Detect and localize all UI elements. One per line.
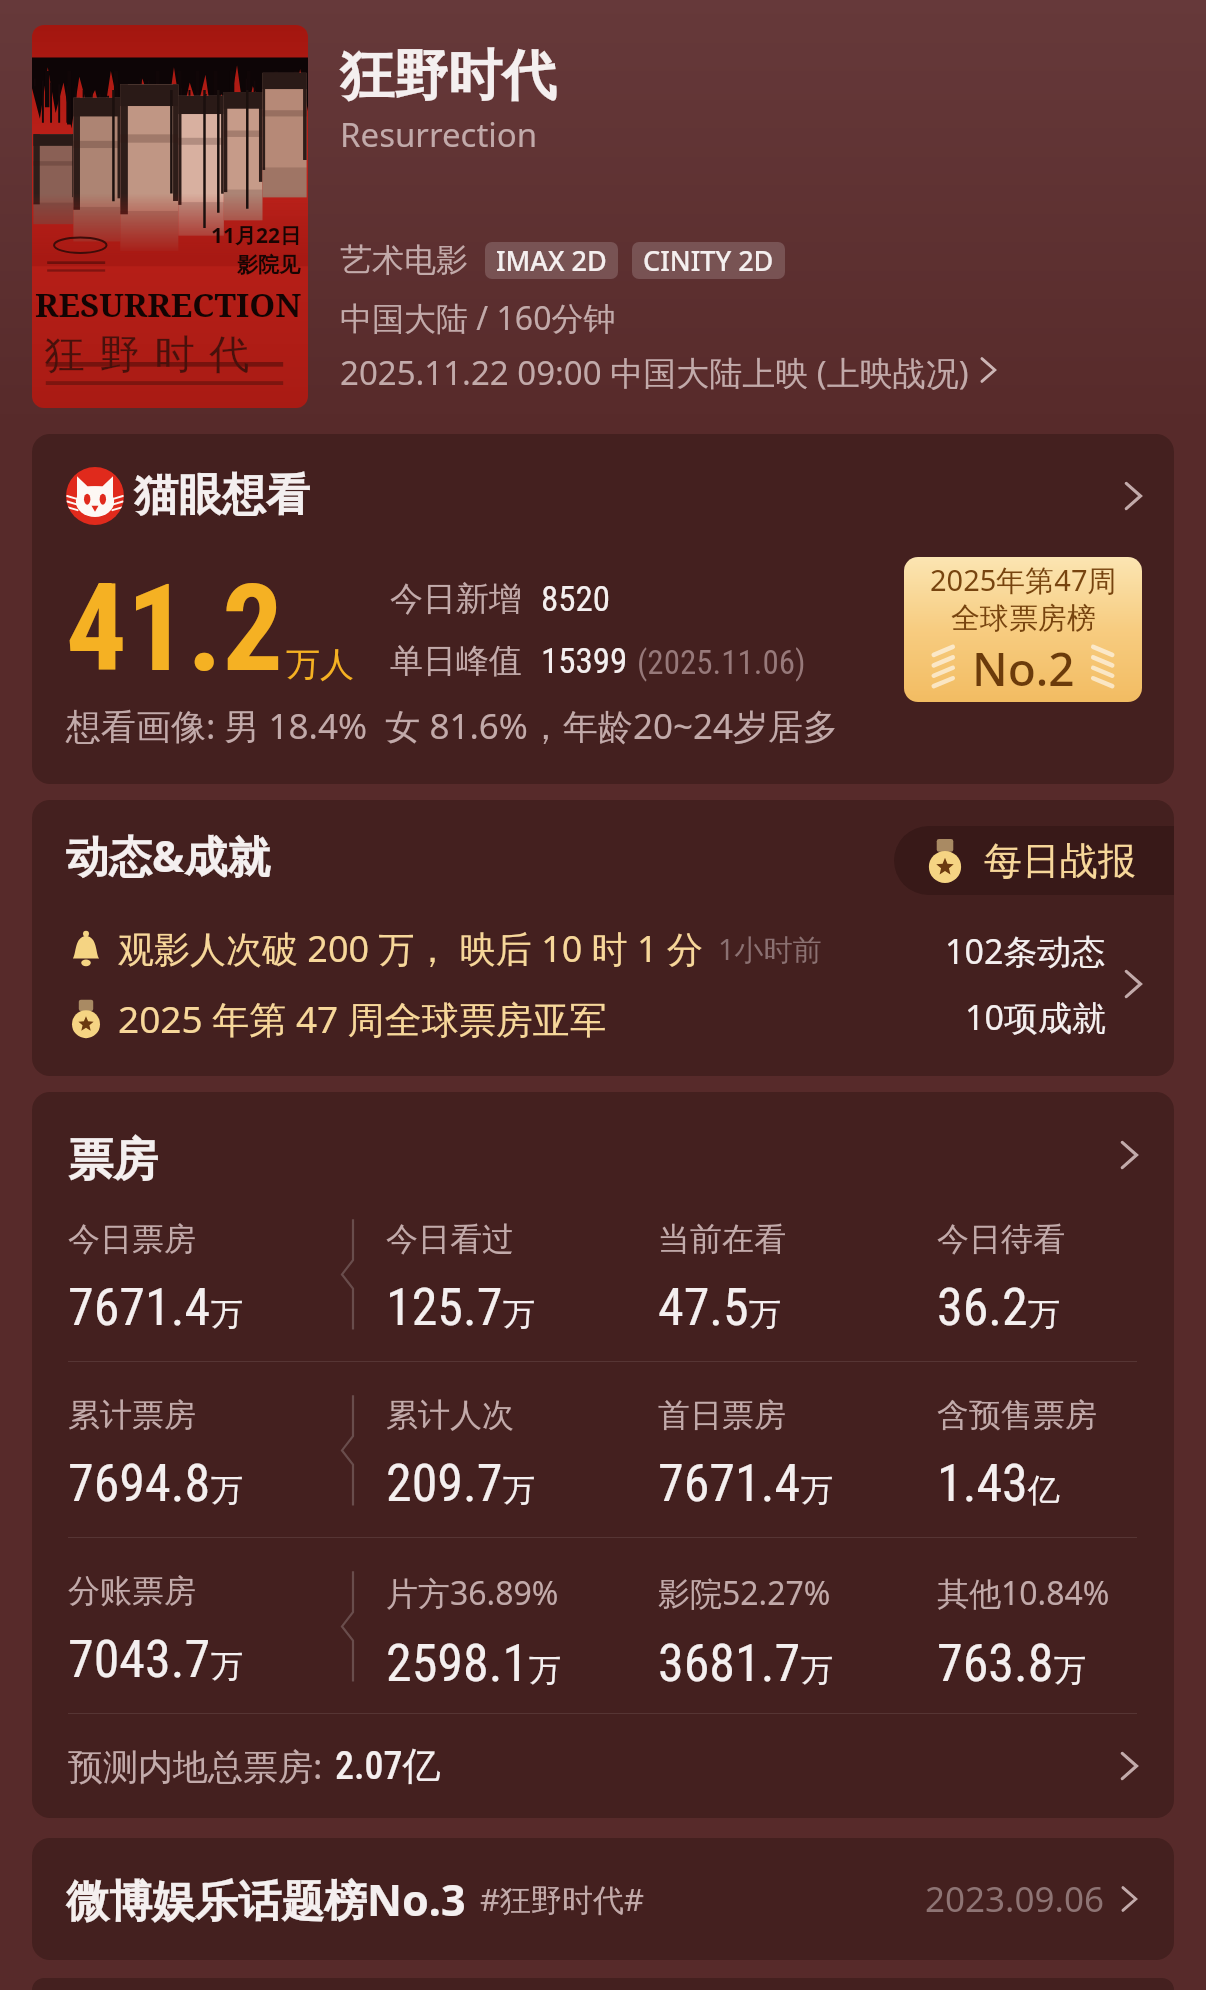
staticText: 观影人次破 200 万， 映后 10 时 1 分 xyxy=(118,924,704,973)
staticText: No.2 xyxy=(972,637,1075,700)
staticText: 7671.4 xyxy=(658,1453,801,1514)
staticText: 分账票房 xyxy=(68,1571,196,1611)
staticText: 想看画像: 男 18.4% 女 81.6%，年龄20~24岁居多 xyxy=(66,702,839,750)
staticText: 今日票房 xyxy=(68,1219,196,1259)
staticText: 万 xyxy=(749,1294,781,1334)
staticText: 41.2 xyxy=(66,559,283,700)
staticText: 万 xyxy=(211,1294,243,1334)
staticText: 预测内地总票房: xyxy=(68,1742,323,1790)
staticText: 今日待看 xyxy=(937,1219,1065,1259)
staticText: 125.7 xyxy=(386,1277,503,1338)
staticText: 万 xyxy=(503,1470,535,1510)
staticText: 首日票房 xyxy=(658,1395,786,1435)
staticText: 1.43 xyxy=(937,1453,1028,1514)
staticText: 累计人次 xyxy=(386,1395,514,1435)
button[interactable]: 每日战报 xyxy=(894,826,1174,895)
staticText: 万 xyxy=(503,1294,535,1334)
staticText: 15399 xyxy=(541,641,628,682)
button[interactable]: 微博娱乐话题榜No.3 xyxy=(32,1838,1174,1960)
staticText: 猫眼想看 xyxy=(134,468,310,523)
staticText: Resurrection xyxy=(340,112,538,157)
staticText: 7694.8 xyxy=(68,1453,211,1514)
staticText: 36.2 xyxy=(937,1277,1028,1338)
staticText: 当前在看 xyxy=(658,1219,786,1259)
staticText: 片方36.89% xyxy=(386,1571,559,1615)
staticText: 万 xyxy=(211,1646,243,1686)
staticText: 2025.11.22 09:00 中国大陆上映 (上映战况) xyxy=(340,350,969,390)
staticText: 2025年第47周 xyxy=(930,560,1117,600)
staticText: 万 xyxy=(1028,1294,1060,1334)
staticText: 47.5 xyxy=(658,1277,749,1338)
staticText: 全球票房榜 xyxy=(951,600,1096,637)
staticText: 微博娱乐话题榜No.3 xyxy=(66,1870,466,1929)
button[interactable]: 2025年第47周 xyxy=(904,557,1142,702)
staticText: 其他10.84% xyxy=(937,1571,1110,1615)
staticText: 1小时前 xyxy=(718,929,822,969)
staticText: 万 xyxy=(529,1650,561,1690)
staticText: 7671.4 xyxy=(68,1277,211,1338)
staticText: 每日战报 xyxy=(984,837,1136,885)
staticText: RESURRECTION xyxy=(35,282,302,327)
staticText: 3681.7 xyxy=(658,1633,801,1694)
staticText: 10项成就 xyxy=(965,994,1106,1040)
staticText: 万 xyxy=(211,1470,243,1510)
button[interactable]: 2025.11.22 09:00 中国大陆上映 (上映战况) xyxy=(340,350,1007,390)
staticText: #狂野时代# xyxy=(480,1878,645,1920)
staticText: CINITY 2D xyxy=(643,242,774,279)
staticText: 亿 xyxy=(1028,1470,1060,1510)
staticText: 累计票房 xyxy=(68,1395,196,1435)
staticText: 万 xyxy=(1054,1650,1086,1690)
staticText: 8520 xyxy=(541,579,611,620)
staticText: 763.8 xyxy=(937,1633,1054,1694)
staticText: 2.07亿 xyxy=(335,1742,441,1790)
button[interactable]: 猫眼想看 xyxy=(32,434,1174,557)
staticText: 万 xyxy=(801,1650,833,1690)
staticText: 狂野时代 xyxy=(37,329,257,379)
staticText: 影院52.27% xyxy=(658,1571,831,1615)
button[interactable]: 票房 xyxy=(32,1092,1174,1186)
staticText: 中国大陆 / 160分钟 xyxy=(340,296,616,336)
staticText: 今日看过 xyxy=(386,1219,514,1259)
staticText: 票房 xyxy=(68,1132,158,1186)
staticText: 209.7 xyxy=(386,1453,503,1514)
staticText: 狂野时代 xyxy=(340,42,556,110)
staticText: 2598.1 xyxy=(386,1633,529,1694)
staticText: (2025.11.06) xyxy=(637,643,806,682)
staticText: 动态&成就 xyxy=(66,826,271,885)
staticText: 影院见 xyxy=(237,252,300,278)
button[interactable]: 观影人次破 200 万， 映后 10 时 1 分 xyxy=(32,895,1174,1076)
staticText: 7043.7 xyxy=(68,1629,211,1690)
staticText: 万 xyxy=(801,1470,833,1510)
staticText: 11月22日 xyxy=(211,221,302,250)
staticText: 单日峰值 xyxy=(390,640,522,682)
staticText: 万人 xyxy=(286,643,354,686)
staticText: 2023.09.06 xyxy=(925,1875,1104,1923)
button[interactable]: 预测内地总票房: xyxy=(32,1714,1174,1818)
staticText: 今日新增 xyxy=(390,578,522,620)
staticText: 含预售票房 xyxy=(937,1395,1097,1435)
staticText: 2025 年第 47 周全球票房亚军 xyxy=(118,993,607,1044)
staticText: IMAX 2D xyxy=(496,242,607,279)
staticText: 102条动态 xyxy=(945,928,1106,974)
staticText: 艺术电影 xyxy=(340,240,468,280)
